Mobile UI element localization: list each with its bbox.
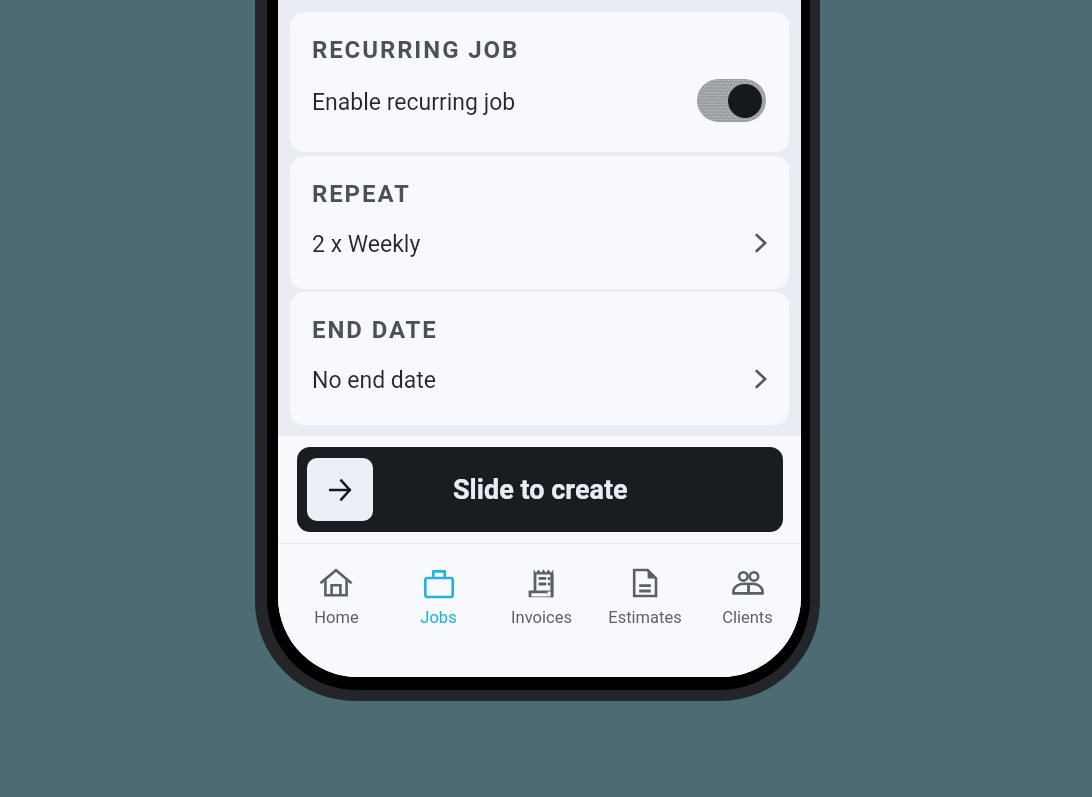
staticText: Clients [722, 608, 773, 627]
button[interactable]: REPEAT [290, 156, 789, 289]
staticText: END DATE [312, 316, 438, 344]
button[interactable]: Jobs [387, 544, 490, 677]
staticText: Invoices [511, 608, 572, 627]
button[interactable]: Slide to create [307, 458, 373, 521]
button[interactable]: Invoices [490, 544, 593, 677]
staticText: No end date [312, 367, 437, 394]
button[interactable]: Home [285, 544, 387, 677]
staticText: Jobs [420, 608, 457, 627]
staticText: Slide to create [453, 474, 628, 506]
button[interactable]: Estimates [593, 544, 696, 677]
button[interactable]: END DATE [290, 292, 789, 425]
staticText: 2 x Weekly [312, 231, 421, 258]
staticText: Home [314, 608, 359, 627]
button[interactable]: Slide to create [297, 447, 783, 532]
button[interactable]: Clients [696, 544, 799, 677]
button[interactable]: Enable recurring job [697, 79, 766, 122]
staticText: Enable recurring job [312, 89, 516, 116]
staticText: RECURRING JOB [312, 36, 520, 64]
staticText: Estimates [608, 608, 682, 627]
staticText: REPEAT [312, 180, 411, 208]
